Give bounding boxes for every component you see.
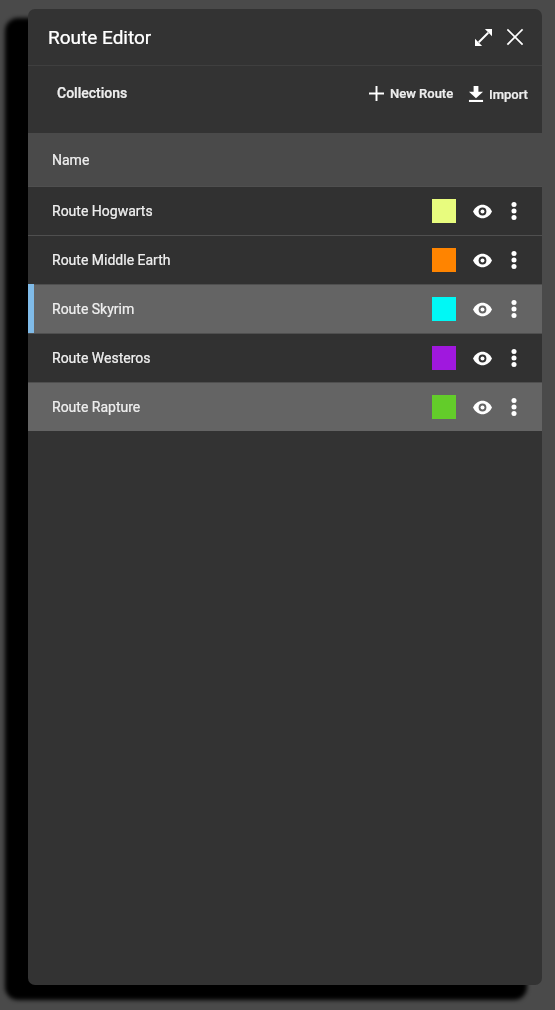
button[interactable]: Route Hogwarts	[28, 186, 542, 235]
button[interactable]: Toggle visibility	[467, 196, 497, 226]
staticText: Route Editor	[48, 26, 152, 48]
button[interactable]: Import	[461, 78, 535, 110]
staticText: New Route	[390, 86, 454, 101]
button[interactable]: Route Westeros	[28, 333, 542, 382]
staticText: Route Rapture	[52, 399, 141, 415]
staticText: Route Hogwarts	[52, 203, 153, 219]
button[interactable]: Toggle visibility	[467, 245, 497, 275]
staticText: Route Westeros	[52, 350, 151, 366]
button[interactable]: More options	[499, 343, 529, 373]
button[interactable]: Route Skyrim	[28, 284, 542, 333]
button[interactable]: More options	[499, 196, 529, 226]
button[interactable]: Route Middle Earth	[28, 235, 542, 284]
button[interactable]: Route Rapture	[28, 382, 542, 431]
button[interactable]: Toggle visibility	[467, 294, 497, 324]
button[interactable]: More options	[499, 245, 529, 275]
staticText: Name	[52, 152, 90, 168]
button[interactable]: New Route	[362, 78, 461, 109]
button[interactable]: Toggle visibility	[467, 392, 497, 422]
button[interactable]: Expand	[466, 20, 500, 54]
staticText: Import	[489, 87, 528, 102]
staticText: Collections	[57, 85, 128, 101]
button[interactable]: Toggle visibility	[467, 343, 497, 373]
staticText: Route Middle Earth	[52, 252, 171, 268]
button[interactable]: More options	[499, 392, 529, 422]
staticText: Route Skyrim	[52, 301, 135, 317]
button[interactable]: Close	[500, 22, 530, 52]
button[interactable]: More options	[499, 294, 529, 324]
